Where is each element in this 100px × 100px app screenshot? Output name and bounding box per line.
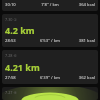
staticText: 364 kcal bbox=[66, 2, 95, 8]
staticText: 7.28 ⑥ bbox=[5, 53, 17, 58]
staticText: 381 kcal bbox=[66, 38, 95, 44]
staticText: 362 kcal bbox=[66, 75, 95, 81]
staticText: 4.2 km bbox=[5, 24, 35, 36]
button[interactable]: 7.30 ① bbox=[2, 14, 98, 47]
staticText: 6'53" / km bbox=[34, 38, 66, 44]
staticText: 4.21 km bbox=[5, 61, 40, 73]
staticText: 28:53 bbox=[5, 38, 34, 44]
button[interactable]: 30:10 bbox=[2, 0, 98, 11]
button[interactable]: 7.27 ④ bbox=[2, 87, 98, 100]
staticText: 30:10 bbox=[5, 2, 34, 8]
button[interactable]: 7.28 ⑥ bbox=[2, 50, 98, 84]
staticText: 6'39" / km bbox=[34, 75, 66, 81]
staticText: 7.27 ④ bbox=[5, 90, 17, 95]
staticText: 7.30 ① bbox=[5, 17, 17, 22]
staticText: 27:58 bbox=[5, 75, 34, 81]
staticText: 7'8" / km bbox=[34, 2, 66, 8]
